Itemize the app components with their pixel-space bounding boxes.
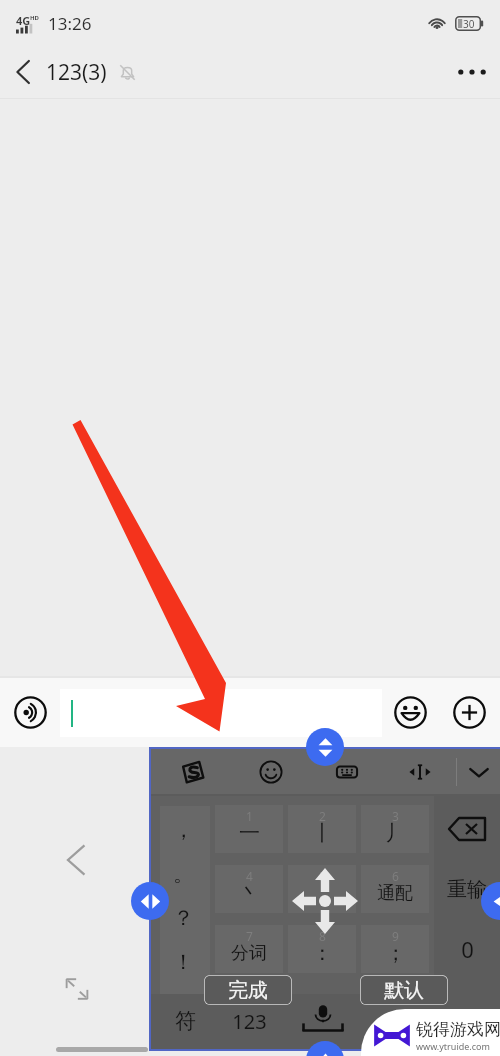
button[interactable]: del	[434, 805, 500, 853]
staticText: 7	[246, 928, 253, 944]
staticText: 3	[392, 808, 399, 824]
button[interactable]: sogou	[169, 749, 217, 794]
button[interactable]: Back	[57, 836, 95, 884]
staticText: 2	[319, 808, 326, 824]
button[interactable]: 符	[160, 999, 210, 1043]
button[interactable]: cursor	[396, 749, 444, 794]
staticText: 重输	[447, 877, 487, 902]
button[interactable]: kb	[323, 749, 371, 794]
button[interactable]: 丨	[288, 805, 356, 853]
staticText: 13:26	[48, 12, 92, 35]
staticText: ；	[385, 940, 406, 966]
staticText: ！	[173, 949, 194, 975]
staticText: 8	[319, 928, 326, 944]
button[interactable]: More options	[444, 46, 500, 98]
button[interactable]: Move left	[481, 882, 500, 920]
button[interactable]: key	[288, 865, 356, 913]
button[interactable]: 分词	[215, 925, 283, 973]
staticText: ，	[173, 817, 194, 843]
button[interactable]: ，	[160, 808, 210, 852]
staticText: 1	[246, 808, 253, 824]
staticText: 锐得游戏网	[416, 1019, 500, 1040]
staticText: 0	[461, 934, 474, 964]
staticText: 6	[392, 868, 399, 884]
button[interactable]: 0	[434, 925, 500, 973]
staticText: ：	[312, 940, 333, 966]
staticText: ？	[173, 905, 194, 931]
button[interactable]: Resize keyboard	[58, 970, 96, 1008]
button[interactable]: 丿	[361, 805, 429, 853]
staticText: 通配	[377, 882, 413, 905]
staticText: 丨	[312, 820, 333, 846]
button[interactable]: Back	[0, 46, 46, 98]
button[interactable]: ；	[361, 925, 429, 973]
staticText: 5	[319, 868, 326, 884]
button[interactable]: chevron	[455, 749, 500, 794]
staticText: 30	[463, 17, 475, 31]
button[interactable]: 。	[160, 852, 210, 896]
button[interactable]: Emoji	[382, 678, 438, 747]
staticText: 完成	[228, 978, 268, 1003]
button[interactable]: Notifications muted	[113, 58, 141, 86]
button[interactable]: space	[288, 999, 429, 1043]
staticText: 123(3)	[46, 58, 107, 87]
button[interactable]: 默认	[360, 975, 448, 1005]
button[interactable]: 123	[215, 999, 283, 1043]
button[interactable]: 完成	[204, 975, 292, 1005]
button[interactable]: ！	[160, 940, 210, 984]
button[interactable]: 一	[215, 805, 283, 853]
staticText: 4G	[16, 13, 31, 28]
button[interactable]: Move up	[306, 1041, 344, 1056]
staticText: 丶	[239, 880, 260, 906]
staticText: www.ytruide.com	[416, 1040, 490, 1052]
button[interactable]: Voice input	[0, 678, 60, 747]
button[interactable]: 通配	[361, 865, 429, 913]
staticText: HD	[30, 14, 39, 22]
button[interactable]: Add attachment	[438, 678, 500, 747]
button[interactable]	[60, 689, 382, 737]
button[interactable]: ：	[288, 925, 356, 973]
button[interactable]: 重输	[434, 865, 500, 913]
button[interactable]: Resize horizontally	[131, 882, 169, 920]
button[interactable]: smile	[247, 749, 295, 794]
staticText: 123	[232, 1008, 267, 1035]
button[interactable]: 丶	[215, 865, 283, 913]
staticText: 4	[246, 868, 253, 884]
button[interactable]: ？	[160, 896, 210, 940]
staticText: 符	[175, 1008, 196, 1034]
staticText: 分词	[231, 942, 267, 965]
staticText: 丿	[385, 820, 406, 846]
button[interactable]: Resize vertically	[306, 728, 344, 766]
staticText: 一	[239, 820, 260, 846]
staticText: 9	[392, 928, 399, 944]
staticText: 。	[173, 861, 194, 887]
staticText: 默认	[384, 978, 424, 1003]
